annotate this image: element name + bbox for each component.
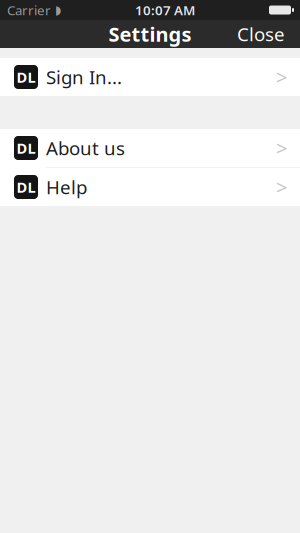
staticText: Carrier bbox=[7, 1, 51, 19]
staticText: Help bbox=[46, 175, 87, 199]
button[interactable]: DL bbox=[0, 58, 300, 96]
staticText: DL bbox=[16, 67, 35, 87]
button[interactable]: Close bbox=[227, 17, 295, 51]
button[interactable]: DL bbox=[0, 129, 300, 167]
staticText: > bbox=[276, 64, 287, 90]
staticText: Close bbox=[237, 22, 285, 46]
staticText: > bbox=[276, 135, 287, 161]
staticText: 10:07 AM bbox=[135, 1, 195, 19]
staticText: DL bbox=[16, 138, 35, 158]
staticText: Sign In... bbox=[46, 65, 122, 89]
staticText: Settings bbox=[108, 21, 191, 47]
button[interactable]: DL bbox=[0, 168, 300, 206]
staticText: About us bbox=[46, 136, 125, 160]
staticText: ◗ bbox=[55, 3, 61, 17]
staticText: DL bbox=[16, 177, 35, 197]
staticText: > bbox=[276, 174, 287, 200]
